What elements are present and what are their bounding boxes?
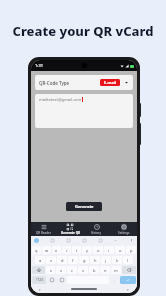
- button[interactable]: Settings: [57, 276, 66, 284]
- button[interactable]: History: [83, 222, 110, 236]
- button[interactable]: Enter: [120, 276, 136, 284]
- button[interactable]: Generate QR: [57, 222, 83, 236]
- staticText: 1:31: [35, 63, 43, 68]
- button[interactable]: ?123: [32, 276, 46, 284]
- staticText: p: [130, 248, 133, 253]
- button[interactable]: v: [78, 266, 88, 274]
- staticText: E-mail: [104, 80, 117, 85]
- staticText: .: [114, 278, 116, 283]
- staticText: Create your QR vCard: [0, 22, 166, 40]
- staticText: Generate QR: [61, 231, 80, 235]
- staticText: v: [82, 268, 85, 273]
- staticText: ?123: [36, 278, 43, 282]
- button[interactable]: u: [93, 246, 103, 254]
- staticText: i: [108, 248, 110, 253]
- button[interactable]: Voice: [129, 238, 134, 243]
- button[interactable]: Backspace: [122, 266, 136, 274]
- staticText: m: [114, 268, 118, 273]
- staticText: ▾: [39, 288, 41, 291]
- staticText: g: [83, 258, 86, 263]
- button[interactable]: g: [79, 256, 89, 264]
- staticText: u: [97, 248, 100, 253]
- button[interactable]: f: [68, 256, 78, 264]
- staticText: s: [50, 258, 52, 263]
- staticText: h: [94, 258, 97, 263]
- button[interactable]: Google: [34, 238, 39, 243]
- button[interactable]: Dropdown: [124, 80, 129, 85]
- staticText: ···: [114, 238, 118, 243]
- button[interactable]: h: [90, 256, 100, 264]
- staticText: b: [93, 268, 96, 273]
- staticText: c: [71, 268, 73, 273]
- button[interactable]: x: [56, 266, 66, 274]
- button[interactable]: Tool 2: [82, 238, 87, 243]
- button[interactable]: j: [101, 256, 111, 264]
- button[interactable]: i: [104, 246, 114, 254]
- button[interactable]: .: [110, 276, 119, 284]
- button[interactable]: Settings: [110, 222, 137, 236]
- staticText: n: [104, 268, 107, 273]
- button[interactable]: l: [123, 256, 133, 264]
- button[interactable]: QR Reader: [31, 222, 57, 236]
- staticText: q: [35, 248, 38, 253]
- button[interactable]: k: [112, 256, 122, 264]
- staticText: e: [55, 248, 58, 253]
- button[interactable]: e: [52, 246, 61, 254]
- staticText: ▾: [127, 288, 129, 291]
- staticText: l: [127, 258, 129, 263]
- button[interactable]: o: [115, 246, 125, 254]
- button[interactable]: r: [62, 246, 71, 254]
- button[interactable]: w: [42, 246, 51, 254]
- staticText: y: [86, 248, 89, 253]
- button[interactable]: q: [32, 246, 41, 254]
- staticText: t: [76, 248, 78, 253]
- button[interactable]: a: [35, 256, 45, 264]
- button[interactable]: Tool 0: [50, 238, 55, 243]
- button[interactable]: c: [67, 266, 77, 274]
- staticText: d: [61, 258, 64, 263]
- button[interactable]: n: [100, 266, 110, 274]
- staticText: QR Reader: [36, 231, 52, 235]
- staticText: k: [116, 258, 119, 263]
- button[interactable]: z: [46, 266, 55, 274]
- staticText: Settings: [118, 231, 130, 235]
- staticText: r: [66, 248, 68, 253]
- staticText: j: [105, 258, 107, 263]
- staticText: f: [72, 258, 74, 263]
- staticText: w: [45, 248, 49, 253]
- button[interactable]: Generate: [66, 202, 102, 211]
- staticText: z: [50, 268, 52, 273]
- button[interactable]: d: [57, 256, 67, 264]
- button[interactable]: m: [111, 266, 121, 274]
- button[interactable]: y: [82, 246, 92, 254]
- staticText: History: [91, 231, 102, 235]
- button[interactable]: Tool 1: [66, 238, 71, 243]
- button[interactable]: p: [126, 246, 136, 254]
- button[interactable]: QR-Code Type: [35, 75, 133, 90]
- staticText: o: [119, 248, 122, 253]
- staticText: Generate: [75, 204, 94, 209]
- button[interactable]: Shift: [32, 266, 45, 274]
- button[interactable]: b: [89, 266, 99, 274]
- button[interactable]: t: [72, 246, 81, 254]
- staticText: x: [60, 268, 63, 273]
- staticText: a: [39, 258, 42, 263]
- staticText: QR-Code Type: [39, 80, 70, 86]
- button[interactable]: Tool 3: [98, 238, 103, 243]
- staticText: mailtotest@gmail.com: [39, 97, 82, 102]
- button[interactable]: mailtotest@gmail.com: [35, 94, 133, 128]
- button[interactable]: Emoji: [47, 276, 56, 284]
- button[interactable]: s: [46, 256, 56, 264]
